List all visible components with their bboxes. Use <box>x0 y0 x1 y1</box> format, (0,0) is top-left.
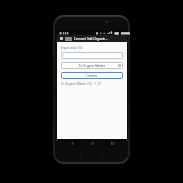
staticText: Convert Soil Organic… <box>74 37 108 41</box>
staticText: Input value (%) : <box>61 46 84 50</box>
staticText: 1 <box>63 54 65 58</box>
button[interactable]: To Organic Matter <box>61 62 123 69</box>
button[interactable]: Convert <box>61 72 123 79</box>
button[interactable]: Open navigation menu <box>59 36 64 41</box>
staticText: To Organic Matter (%) : 1.72 <box>61 82 101 86</box>
staticText: Convert <box>86 74 98 78</box>
button[interactable]: Back <box>67 139 77 147</box>
staticText: To Organic Matter <box>63 64 121 68</box>
button[interactable]: Home <box>87 139 97 147</box>
button[interactable]: Recent apps <box>107 139 117 147</box>
button[interactable]: 1 <box>61 52 123 59</box>
